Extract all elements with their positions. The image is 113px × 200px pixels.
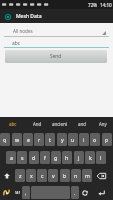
staticText: z <box>19 172 22 179</box>
staticText: ancient <box>52 121 68 127</box>
staticText: v <box>52 172 55 179</box>
staticText: p <box>105 136 109 143</box>
staticText: l <box>100 154 102 161</box>
staticText: All nodes <box>13 28 33 34</box>
staticText: w <box>15 136 20 143</box>
staticText: y <box>61 136 64 143</box>
staticText: d <box>32 154 36 161</box>
staticText: b <box>63 172 67 179</box>
staticText: and <box>78 121 86 127</box>
button[interactable]: i <box>79 133 89 146</box>
staticText: f <box>44 154 46 161</box>
button[interactable]: e <box>23 133 33 146</box>
button[interactable]: Undo <box>79 186 91 199</box>
button[interactable]: d <box>29 151 39 164</box>
staticText: . <box>74 189 76 196</box>
button[interactable]: All nodes <box>4 24 109 37</box>
button[interactable]: Symbols <box>13 186 22 199</box>
staticText: r <box>38 136 41 143</box>
staticText: 14:10 <box>100 2 112 8</box>
staticText: g <box>54 154 58 161</box>
staticText: e <box>27 136 30 143</box>
staticText: j <box>78 154 80 161</box>
staticText: h <box>65 154 69 161</box>
button[interactable]: o <box>90 133 100 146</box>
staticText: Send <box>50 53 62 60</box>
button[interactable]: m <box>82 169 92 182</box>
button[interactable]: abc <box>4 38 109 48</box>
staticText: k <box>89 154 92 161</box>
button[interactable]: And <box>26 117 48 131</box>
button[interactable]: x <box>26 169 36 182</box>
staticText: , <box>25 189 27 196</box>
button[interactable]: ancient <box>48 117 72 131</box>
button[interactable]: w <box>12 133 22 146</box>
staticText: o <box>93 136 97 143</box>
button[interactable]: y <box>57 133 67 146</box>
staticText: q <box>3 136 7 143</box>
staticText: abc <box>12 40 20 47</box>
button[interactable]: r <box>34 133 44 146</box>
staticText: Mesh Data <box>16 13 42 20</box>
button[interactable]: Send <box>5 50 107 63</box>
staticText: t <box>49 136 51 143</box>
button[interactable]: a <box>6 151 16 164</box>
button[interactable]: j <box>74 151 84 164</box>
button[interactable]: p <box>102 133 112 146</box>
button[interactable]: abc <box>2 117 24 131</box>
staticText: u <box>71 136 75 143</box>
button[interactable]: b <box>60 169 70 182</box>
staticText: And <box>33 121 42 127</box>
button[interactable]: s <box>17 151 27 164</box>
button[interactable]: f <box>40 151 50 164</box>
button[interactable]: Backspace <box>93 169 109 182</box>
button[interactable]: h <box>62 151 72 164</box>
staticText: n <box>74 172 78 179</box>
button[interactable]: t <box>45 133 55 146</box>
button[interactable]: Any <box>92 117 113 131</box>
staticText: s <box>21 154 24 161</box>
button[interactable]: k <box>85 151 95 164</box>
button[interactable]: u <box>68 133 78 146</box>
staticText: m <box>85 172 90 179</box>
staticText: abc <box>9 121 17 127</box>
button[interactable]: c <box>37 169 47 182</box>
staticText: 72% <box>88 2 98 8</box>
staticText: c <box>41 172 44 179</box>
button[interactable]: g <box>51 151 61 164</box>
staticText: x <box>30 172 33 179</box>
button[interactable]: and <box>72 117 92 131</box>
button[interactable]: , <box>22 186 30 199</box>
button[interactable]: v <box>48 169 58 182</box>
staticText: Any <box>99 121 107 127</box>
button[interactable]: l <box>96 151 106 164</box>
button[interactable]: n <box>71 169 81 182</box>
button[interactable]: z <box>15 169 25 182</box>
button[interactable]: Emoji <box>0 186 13 199</box>
button[interactable]: Enter <box>92 186 110 199</box>
button[interactable]: Shift <box>0 169 14 182</box>
button[interactable]: q <box>0 133 10 146</box>
staticText: !#1 <box>15 190 21 195</box>
staticText: a <box>10 154 13 161</box>
staticText: i <box>83 136 85 143</box>
button[interactable]: . <box>71 186 79 199</box>
